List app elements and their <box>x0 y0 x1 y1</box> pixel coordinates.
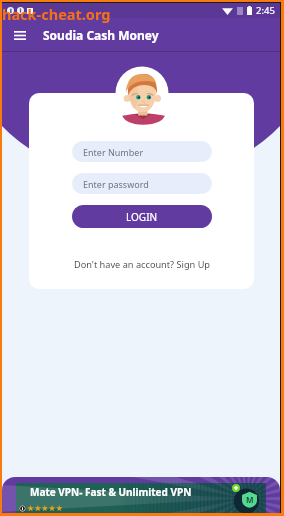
staticText: Don't have an account? Sign Up <box>74 258 210 271</box>
button[interactable]: LOGIN <box>72 205 212 228</box>
button[interactable]: Don't have an account? Sign Up <box>70 256 214 273</box>
staticText: Enter Number <box>83 146 144 158</box>
staticText: Soudia Cash Money <box>43 27 159 43</box>
staticText: 2:45 <box>256 4 275 17</box>
button[interactable]: Mate VPN- Fast & Unlimited VPN <box>2 477 280 513</box>
staticText: LOGIN <box>126 210 158 224</box>
staticText: M <box>246 494 254 505</box>
button[interactable]: Enter Number <box>72 141 212 162</box>
button[interactable]: Open navigation menu <box>2 18 38 52</box>
staticText: ★★★★★ <box>27 504 63 513</box>
button[interactable]: Enter password <box>72 173 212 194</box>
staticText: Enter password <box>83 178 149 190</box>
staticText: Mate VPN- Fast & Unlimited VPN <box>30 485 192 499</box>
staticText: hack-cheat.org <box>2 4 111 24</box>
